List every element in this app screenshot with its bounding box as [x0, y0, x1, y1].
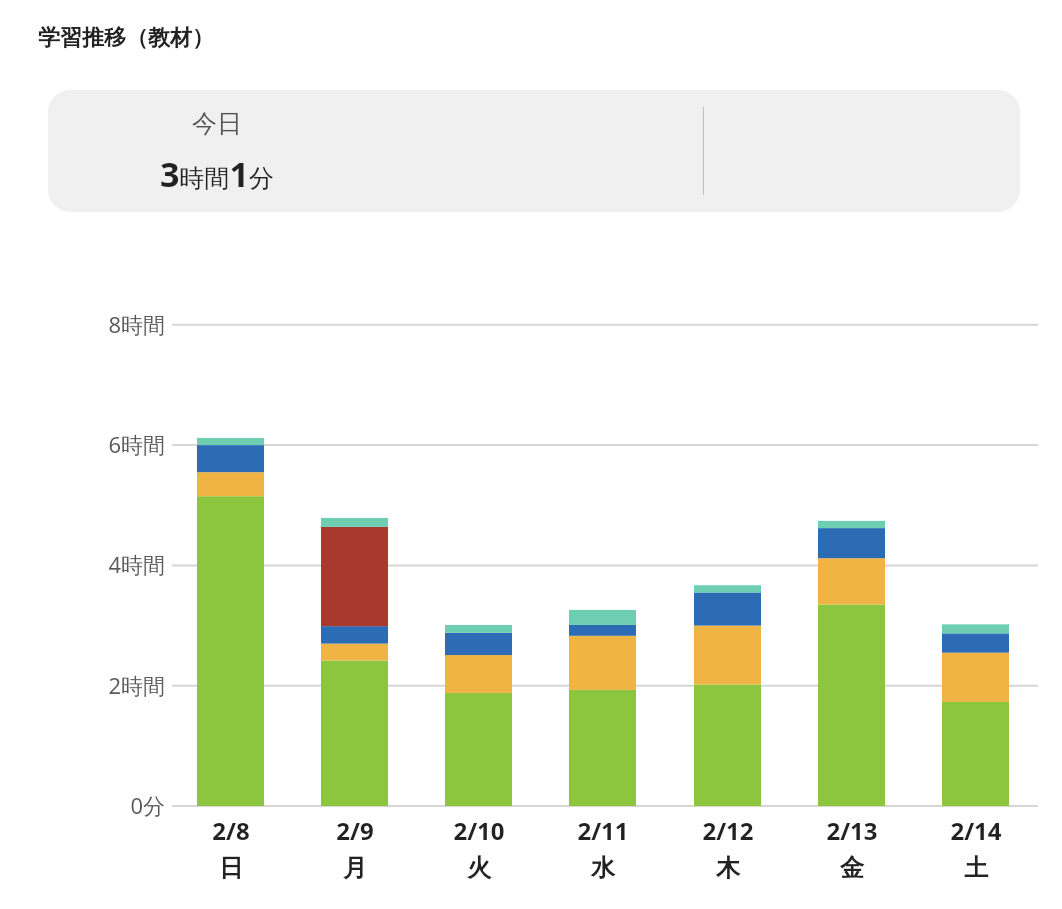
button[interactable]: 2/10	[419, 814, 539, 883]
staticText: 金	[840, 853, 864, 883]
staticText: 0分	[130, 790, 165, 820]
button[interactable]: 今日	[48, 90, 386, 197]
staticText: 水	[591, 853, 615, 883]
staticText: 木	[716, 853, 740, 883]
button[interactable]: 2/14	[916, 814, 1036, 883]
staticText: 2時間	[108, 670, 165, 700]
staticText: 学習推移（教材）	[38, 24, 214, 52]
staticText: 2/14	[950, 814, 1002, 847]
staticText: 2/11	[577, 814, 629, 847]
button[interactable]: 2/13	[792, 814, 912, 883]
staticText: 2/8	[212, 814, 250, 847]
staticText: 2/10	[453, 814, 505, 847]
staticText: 2/12	[702, 814, 754, 847]
staticText: 2/13	[826, 814, 878, 847]
staticText: 土	[964, 853, 988, 883]
staticText: 火	[467, 853, 491, 883]
staticText: 2/9	[336, 814, 374, 847]
button[interactable]: 2/11	[543, 814, 663, 883]
staticText: 日	[219, 853, 243, 883]
staticText: 今日	[192, 108, 242, 139]
staticText: 月	[343, 853, 367, 883]
button[interactable]: 2/9	[295, 814, 415, 883]
button[interactable]: 2/8	[171, 814, 291, 883]
staticText: 3時間1分	[160, 151, 274, 197]
staticText: 6時間	[108, 429, 165, 459]
staticText: 8時間	[108, 309, 165, 339]
button[interactable]: 2/12	[668, 814, 788, 883]
staticText: 4時間	[108, 549, 165, 579]
